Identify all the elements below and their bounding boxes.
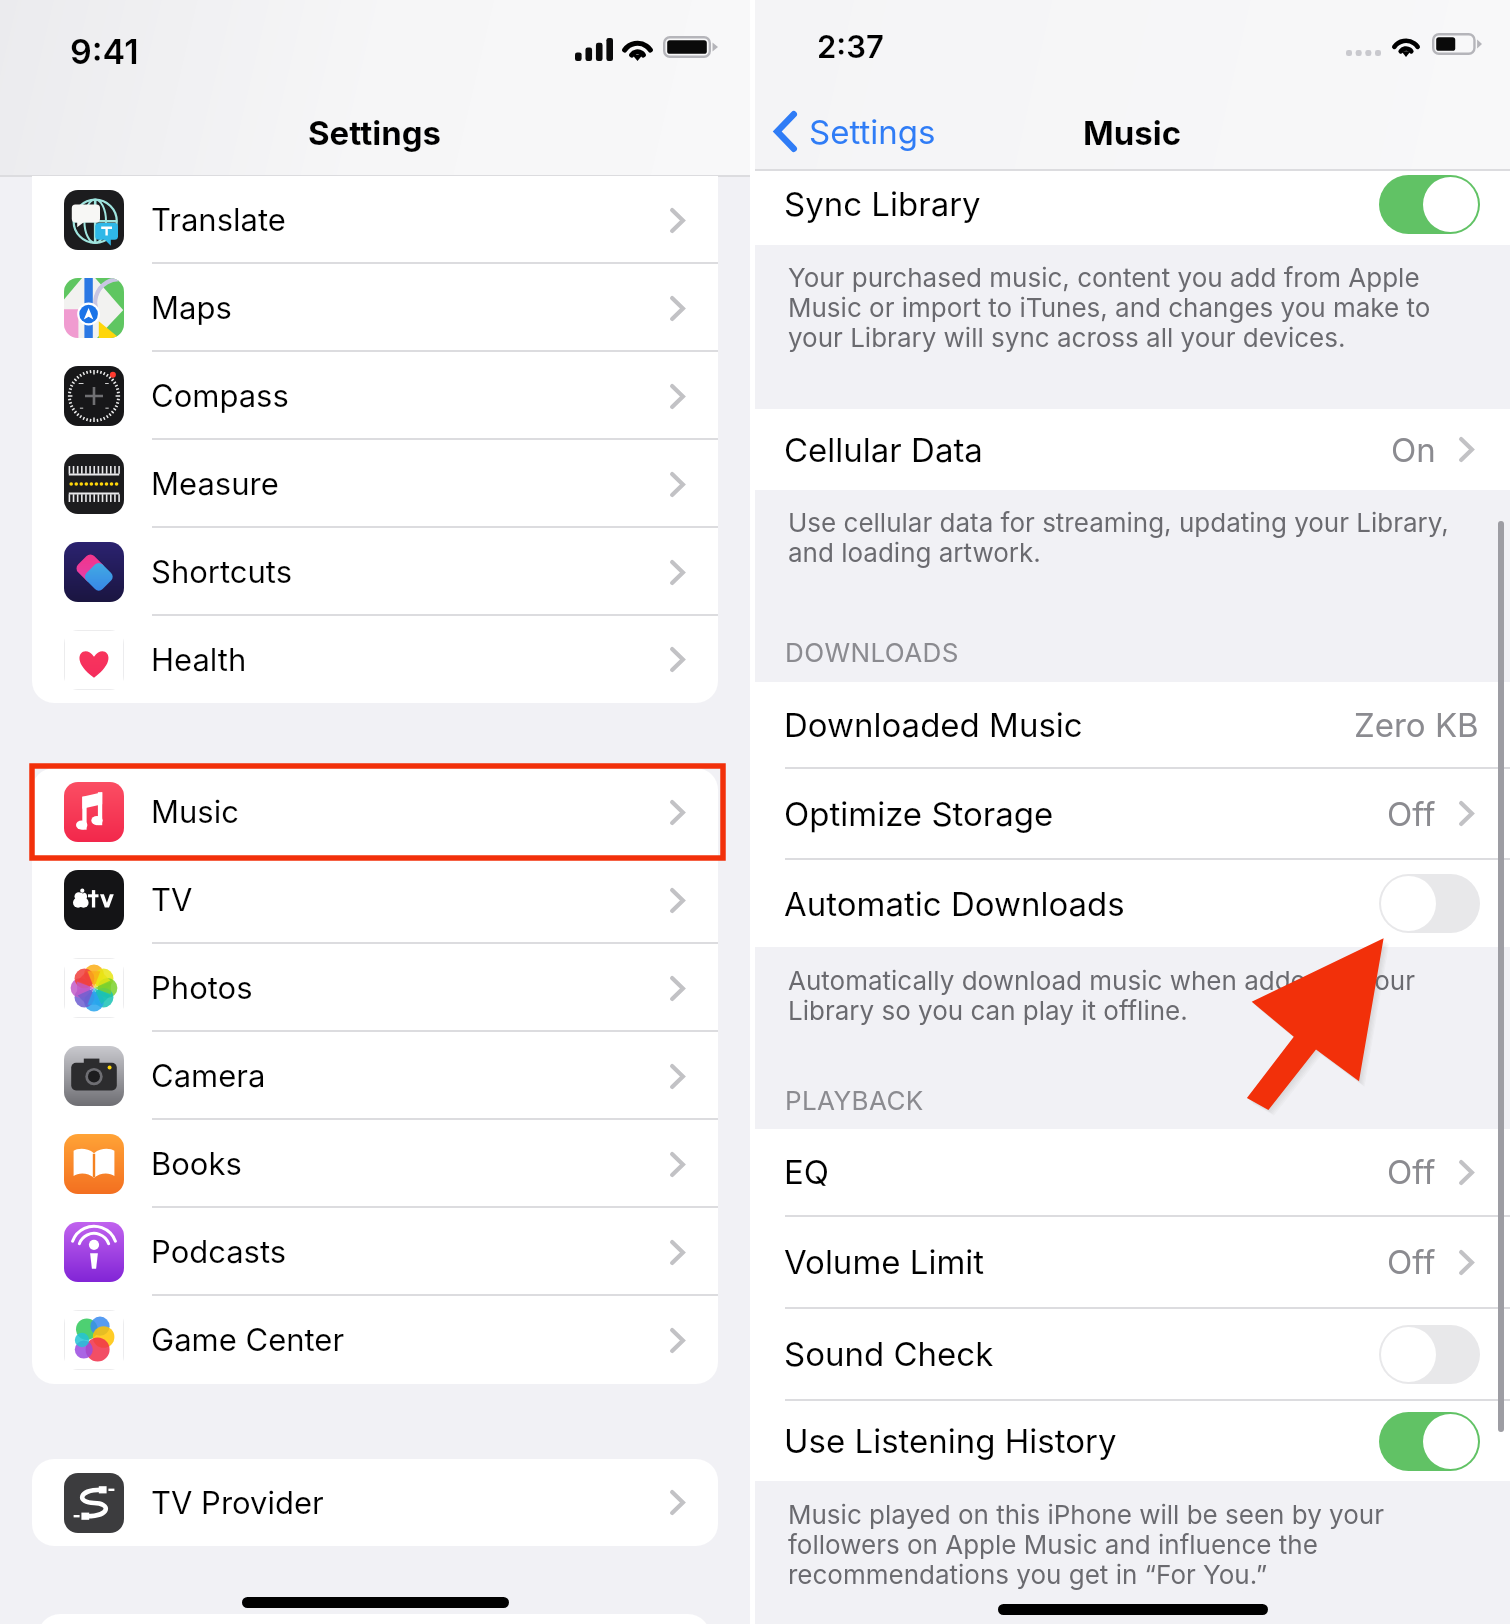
staticText: Game Center <box>151 1321 670 1359</box>
staticText: Translate <box>151 201 670 239</box>
button[interactable]: Health <box>32 616 718 703</box>
staticText: Music played on this iPhone will be seen… <box>788 1499 1428 1591</box>
button[interactable]: Photos <box>32 944 718 1032</box>
staticText: Automatic Downloads <box>784 884 1379 924</box>
staticText: Sound Check <box>784 1334 1379 1374</box>
staticText: Sync Library <box>784 184 1379 224</box>
staticText: Your purchased music, content you add fr… <box>788 262 1438 354</box>
staticText: Music <box>1083 113 1182 153</box>
staticText: Automatically download music when added … <box>788 965 1468 1027</box>
button[interactable]: Game Center <box>32 1296 718 1384</box>
staticText: Use cellular data for streaming, updatin… <box>788 507 1468 569</box>
staticText: Settings <box>308 113 442 153</box>
staticText: Downloaded Music <box>784 705 1354 745</box>
button[interactable]: TV <box>32 856 718 944</box>
staticText: PLAYBACK <box>785 1085 924 1116</box>
staticText: On <box>1391 430 1436 470</box>
staticText: Compass <box>151 377 670 415</box>
staticText: Books <box>151 1145 670 1183</box>
staticText: 2:37 <box>817 28 884 66</box>
staticText: Volume Limit <box>784 1242 1387 1282</box>
button[interactable]: Camera <box>32 1032 718 1120</box>
button[interactable]: Books <box>32 1120 718 1208</box>
button[interactable]: Shortcuts <box>32 528 718 616</box>
button[interactable]: Podcasts <box>32 1208 718 1296</box>
staticText: Maps <box>151 289 670 327</box>
button[interactable]: Sound Check <box>755 1309 1510 1399</box>
button[interactable]: EQ <box>755 1129 1510 1215</box>
button[interactable]: Cellular Data <box>755 409 1510 490</box>
button[interactable]: Sound Check, off <box>1379 1325 1480 1384</box>
staticText: Off <box>1387 1152 1436 1192</box>
button[interactable]: Optimize Storage <box>755 769 1510 858</box>
staticText: Health <box>151 641 670 679</box>
staticText: TV <box>151 881 670 919</box>
button[interactable]: Settings <box>774 111 936 152</box>
button[interactable]: Measure <box>32 440 718 528</box>
button[interactable]: Automatic Downloads <box>755 860 1510 947</box>
button[interactable]: Use Listening History <box>755 1401 1510 1481</box>
staticText: Music <box>151 793 670 831</box>
staticText: Cellular Data <box>784 430 1391 470</box>
staticText: TV Provider <box>151 1484 670 1522</box>
button[interactable]: Translate <box>32 176 718 264</box>
button[interactable]: Volume Limit <box>755 1217 1510 1307</box>
staticText: Podcasts <box>151 1233 670 1271</box>
button[interactable]: Sync Library, on <box>1379 175 1480 234</box>
staticText: EQ <box>784 1152 1387 1192</box>
staticText: Use Listening History <box>784 1421 1379 1461</box>
button[interactable]: TV Provider <box>32 1459 718 1546</box>
button[interactable]: Sync Library <box>755 167 1510 241</box>
staticText: 9:41 <box>70 31 139 72</box>
staticText: Measure <box>151 465 670 503</box>
staticText: Camera <box>151 1057 670 1095</box>
staticText: Off <box>1387 1242 1436 1282</box>
staticText: Shortcuts <box>151 553 670 591</box>
staticText: Settings <box>809 112 936 152</box>
staticText: Off <box>1387 794 1436 834</box>
button[interactable]: Compass <box>32 352 718 440</box>
button[interactable]: Maps <box>32 264 718 352</box>
staticText: Zero KB <box>1354 705 1479 745</box>
button[interactable]: Automatic Downloads, off <box>1379 874 1480 933</box>
staticText: Photos <box>151 969 670 1007</box>
button[interactable]: Downloaded Music <box>755 682 1510 767</box>
staticText: Optimize Storage <box>784 794 1387 834</box>
button[interactable]: Music <box>32 768 718 856</box>
button[interactable]: Use Listening History, on <box>1379 1412 1480 1471</box>
staticText: DOWNLOADS <box>785 637 959 668</box>
